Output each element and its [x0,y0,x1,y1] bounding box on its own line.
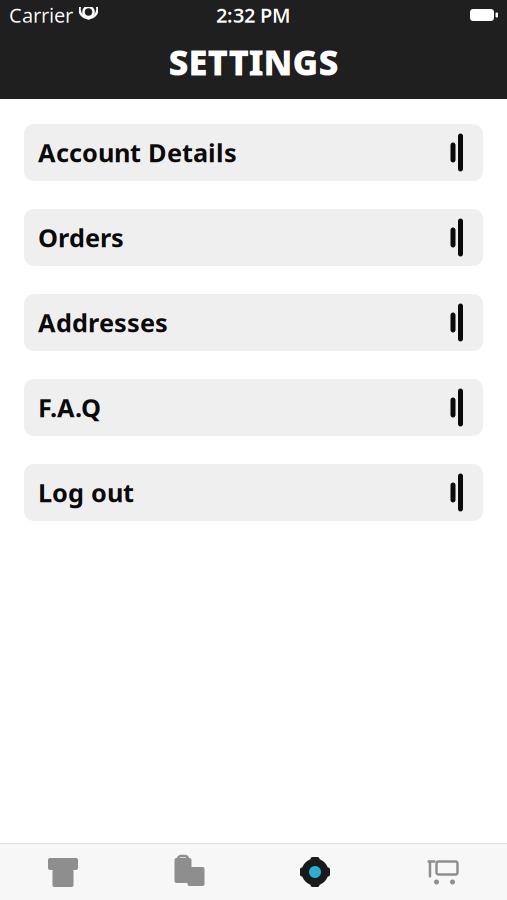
staticText: SETTINGS [168,39,338,85]
staticText: Addresses [38,306,168,339]
button[interactable]: Log out [24,464,483,521]
button[interactable]: Home [0,844,126,900]
staticText: Account Details [38,136,237,169]
button[interactable]: F.A.Q [24,379,483,436]
staticText: F.A.Q [38,391,101,424]
button[interactable]: Orders [24,209,483,266]
staticText: Log out [38,476,134,509]
button[interactable]: Shop [126,844,252,900]
staticText: Orders [38,221,124,254]
button[interactable]: Settings [252,844,378,900]
button[interactable]: Addresses [24,294,483,351]
staticText: 2:32 PM [216,2,291,28]
button[interactable]: Cart [378,844,507,900]
staticText: Carrier [9,2,73,28]
button[interactable]: Account Details [24,124,483,181]
